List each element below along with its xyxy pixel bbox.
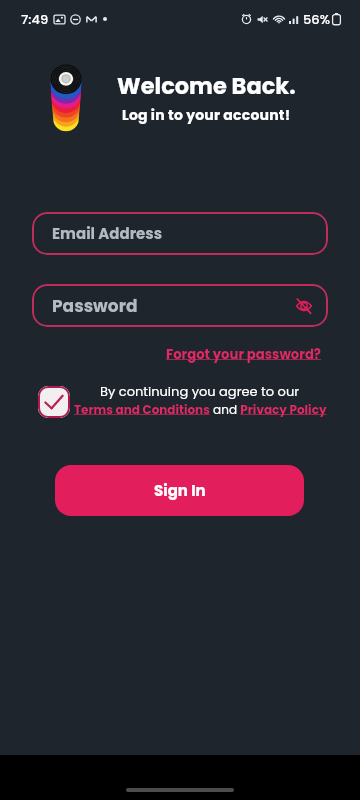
- button[interactable]: Email Address: [32, 212, 328, 255]
- button[interactable]: Terms and Conditions and Privacy Policy: [74, 401, 327, 418]
- staticText: Password: [52, 294, 138, 318]
- button[interactable]: Forgot your password?: [166, 345, 321, 363]
- button[interactable]: Sign In: [55, 465, 304, 516]
- staticText: 56%: [303, 10, 330, 28]
- staticText: Email Address: [52, 223, 163, 244]
- staticText: Welcome Back.: [117, 70, 296, 101]
- staticText: By continuing you agree to our: [100, 382, 300, 400]
- staticText: Log in to your account!: [122, 105, 291, 125]
- button[interactable]: Accept terms: [38, 386, 70, 418]
- staticText: 7:49: [21, 10, 49, 28]
- staticText: Sign In: [154, 480, 206, 501]
- button[interactable]: Show password: [292, 294, 316, 318]
- button[interactable]: Password: [32, 284, 328, 327]
